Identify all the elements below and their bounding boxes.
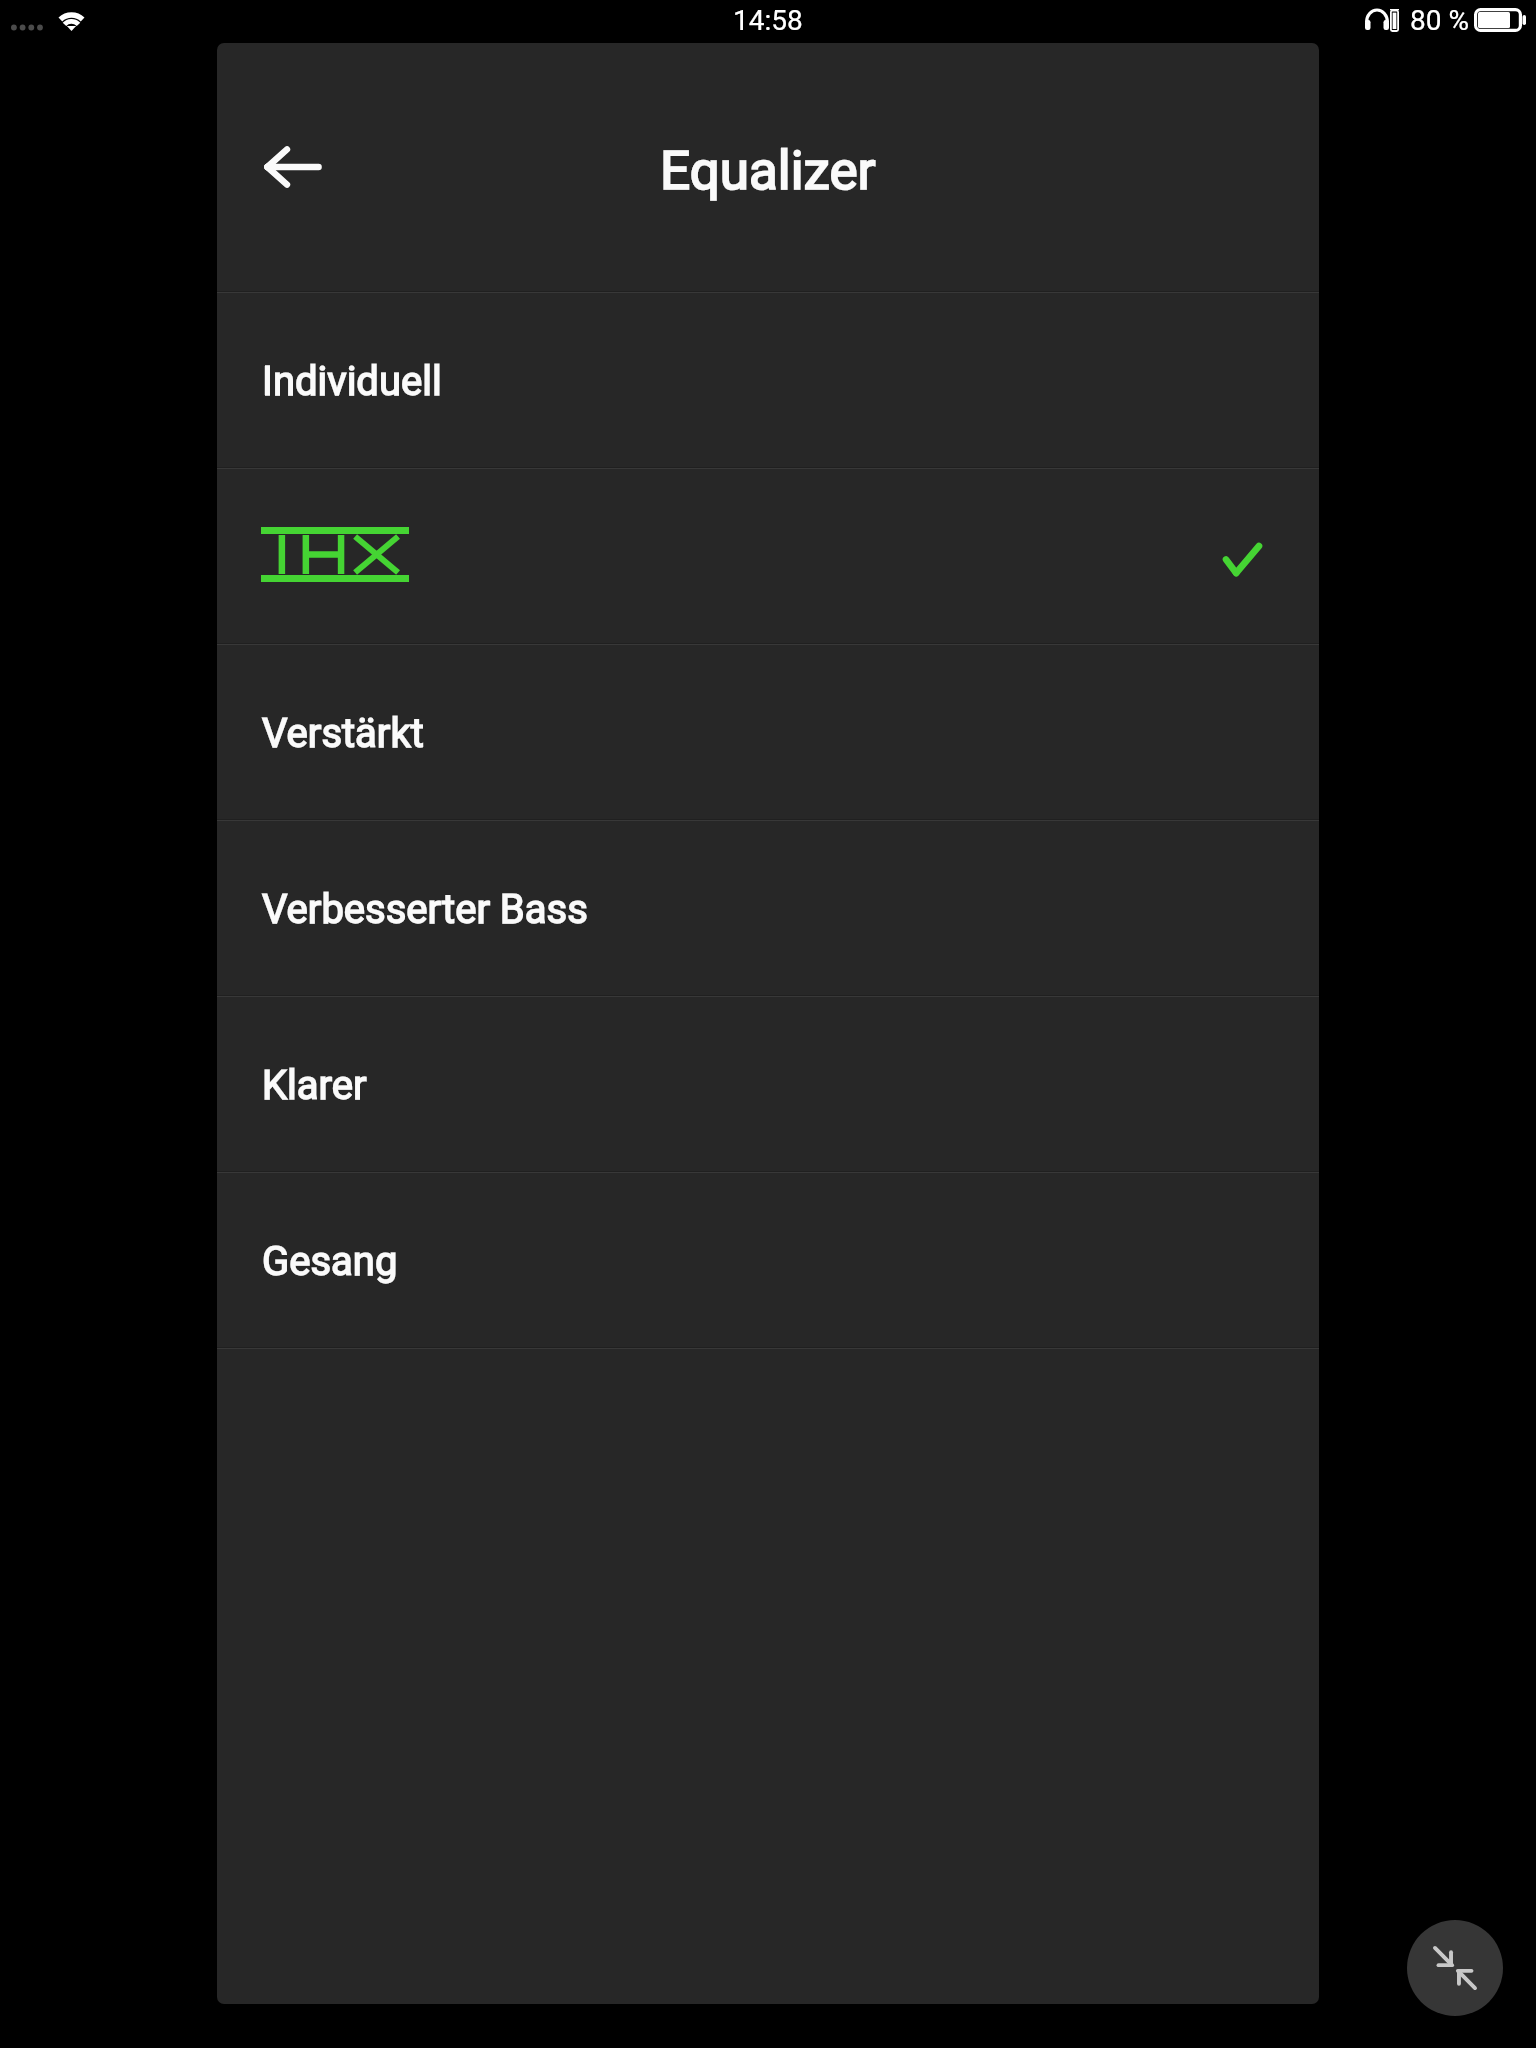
button[interactable]: THX, selected: [217, 469, 1319, 643]
staticText: Equalizer: [660, 140, 876, 202]
button[interactable]: Klarer: [217, 997, 1319, 1171]
staticText: 14:58: [733, 4, 803, 37]
button[interactable]: Individuell: [217, 293, 1319, 467]
button[interactable]: Verstärkt: [217, 645, 1319, 819]
staticText: Gesang: [262, 1238, 398, 1285]
staticText: Klarer: [262, 1062, 367, 1109]
button[interactable]: Verbesserter Bass: [217, 821, 1319, 995]
button[interactable]: Gesang: [217, 1173, 1319, 1347]
staticText: Verstärkt: [262, 710, 424, 757]
staticText: Individuell: [262, 358, 442, 405]
staticText: Verbesserter Bass: [262, 886, 588, 933]
staticText: 80 %: [1410, 4, 1469, 37]
button[interactable]: Back: [246, 123, 338, 211]
button[interactable]: Collapse: [1407, 1920, 1503, 2016]
